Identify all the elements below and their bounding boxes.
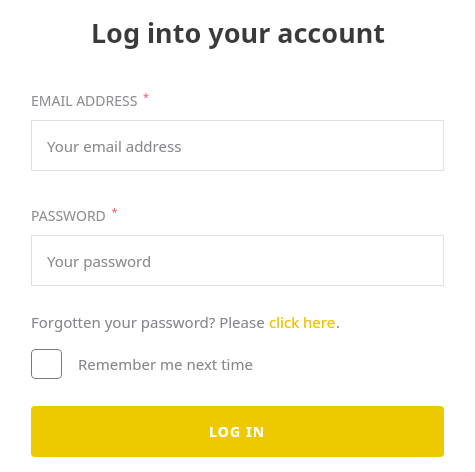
button[interactable]: Your email address — [31, 120, 444, 171]
staticText: EMAIL ADDRESS * — [31, 89, 150, 110]
staticText: . — [336, 312, 341, 332]
staticText: Your password — [47, 251, 152, 271]
staticText: Forgotten your password? Please — [31, 312, 269, 332]
other: Remember me next time — [31, 349, 62, 379]
staticText: click here — [269, 312, 336, 332]
staticText: Remember me next time — [78, 354, 253, 374]
button[interactable]: click here — [269, 312, 336, 332]
staticText: PASSWORD * — [31, 204, 118, 225]
button[interactable]: Remember me next time — [31, 349, 253, 379]
staticText: LOG IN — [209, 422, 266, 441]
staticText: Log into your account — [91, 14, 385, 51]
button[interactable]: Your password — [31, 235, 444, 286]
button[interactable]: LOG IN — [31, 406, 444, 457]
staticText: Your email address — [47, 136, 182, 156]
